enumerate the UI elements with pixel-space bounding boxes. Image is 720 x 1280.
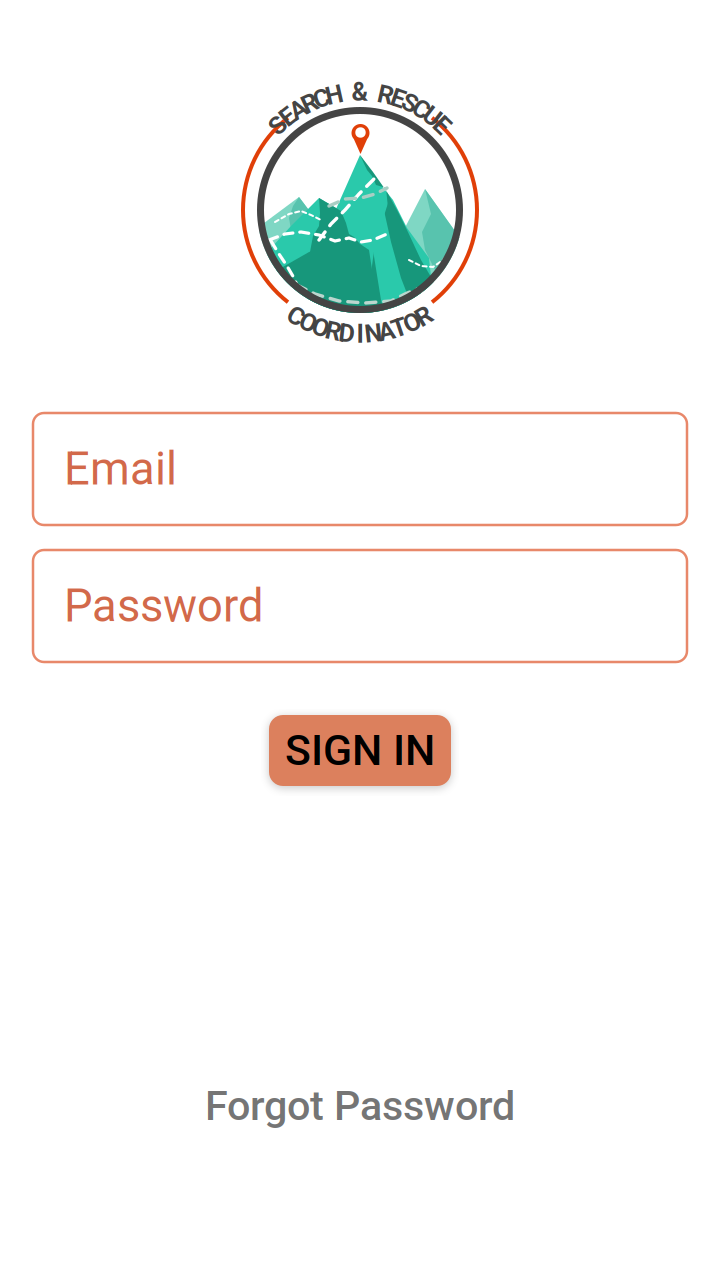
button[interactable]: SIGN IN: [269, 715, 451, 786]
staticText: U: [424, 102, 441, 131]
staticText: R: [302, 88, 318, 118]
staticText: I: [356, 319, 363, 349]
staticText: D: [339, 318, 355, 348]
staticText: C: [413, 94, 430, 124]
staticText: S: [270, 110, 286, 140]
staticText: E: [391, 83, 405, 113]
staticText: SIGN IN: [285, 725, 435, 775]
staticText: O: [403, 308, 420, 337]
button[interactable]: Password: [33, 550, 687, 662]
staticText: R: [325, 316, 341, 346]
staticText: E: [435, 110, 449, 140]
staticText: [370, 78, 376, 108]
staticText: A: [290, 94, 307, 124]
staticText: R: [378, 80, 394, 110]
staticText: R: [416, 301, 432, 331]
staticText: N: [364, 318, 382, 348]
staticText: Password: [64, 579, 264, 632]
staticText: Email: [64, 442, 177, 495]
staticText: &: [351, 77, 368, 107]
staticText: C: [288, 301, 305, 331]
staticText: O: [299, 308, 316, 337]
staticText: C: [313, 83, 330, 113]
staticText: S: [402, 88, 418, 118]
staticText: O: [312, 313, 329, 342]
button[interactable]: Email: [33, 413, 687, 525]
staticText: Forgot Password: [205, 1082, 515, 1130]
staticText: T: [392, 313, 408, 342]
button[interactable]: Forgot Password: [195, 1072, 525, 1140]
staticText: A: [378, 316, 395, 346]
staticText: E: [281, 102, 295, 131]
staticText: [344, 78, 350, 108]
staticText: H: [325, 80, 343, 110]
